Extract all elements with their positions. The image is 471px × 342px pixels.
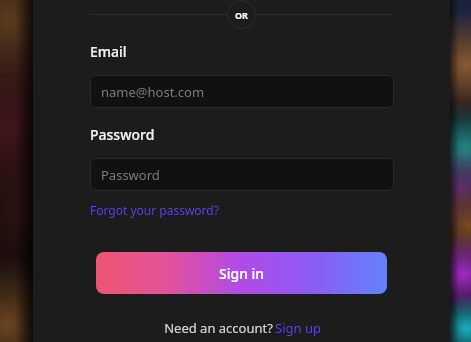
staticText: Sign up [275,319,321,337]
staticText: Need an account? [162,319,275,337]
button[interactable]: Password [90,158,394,191]
staticText: name@host.com [101,83,205,101]
staticText: OR [235,9,249,21]
staticText: Password [90,125,155,144]
staticText: Sign in [219,264,265,283]
staticText: Password [101,166,160,184]
button[interactable]: Sign in [96,252,387,294]
button[interactable]: name@host.com [90,75,394,108]
staticText: Forgot your password? [90,202,219,218]
button[interactable]: Sign up [275,319,321,337]
staticText: Email [90,42,127,61]
button[interactable]: Forgot your password? [90,202,219,218]
